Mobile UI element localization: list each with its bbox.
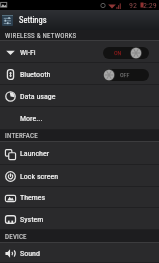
staticText: WIRELESS & NETWORKS [5,32,77,40]
button[interactable]: Launcher [0,142,159,165]
button[interactable]: Settings, up [0,10,159,30]
button[interactable]: Data usage [0,85,159,107]
staticText: Bluetooth [20,70,51,79]
staticText: OFF [120,71,130,78]
staticText: ON [114,49,122,56]
button[interactable]: More... [0,107,159,130]
staticText: 2:29 [143,1,157,10]
button[interactable]: Themes [0,187,159,208]
button[interactable]: Switch off [103,68,149,81]
staticText: INTERFACE [5,132,38,140]
staticText: System [20,215,44,224]
button[interactable]: Bluetooth [0,63,159,85]
staticText: More... [20,114,43,123]
staticText: DEVICE [5,233,27,241]
staticText: Themes [20,193,46,202]
button[interactable]: Wi-Fi [0,41,159,63]
staticText: Lock screen [20,172,59,181]
staticText: Wi-Fi [20,48,36,57]
button[interactable]: Switch on [103,46,149,59]
button[interactable]: Lock screen [0,165,159,187]
staticText: Data usage [20,92,56,101]
button[interactable]: Sound [0,243,159,263]
staticText: Sound [20,249,40,258]
staticText: Launcher [20,149,50,158]
staticText: Settings [19,15,47,25]
staticText: 92 [129,1,137,10]
button[interactable]: System [0,208,159,230]
